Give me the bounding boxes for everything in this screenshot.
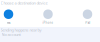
staticText: Sending happens nearby xyxy=(0,27,41,33)
button[interactable]: iPhone xyxy=(42,9,53,24)
staticText: iPad xyxy=(84,21,90,24)
button[interactable]: iPad xyxy=(83,9,92,24)
staticText: iPhone xyxy=(42,21,53,24)
staticText: No account xyxy=(1,32,20,37)
staticText: Choose a destination device xyxy=(0,0,47,6)
staticText: Mac xyxy=(6,21,10,24)
button[interactable]: Mac xyxy=(4,9,13,24)
